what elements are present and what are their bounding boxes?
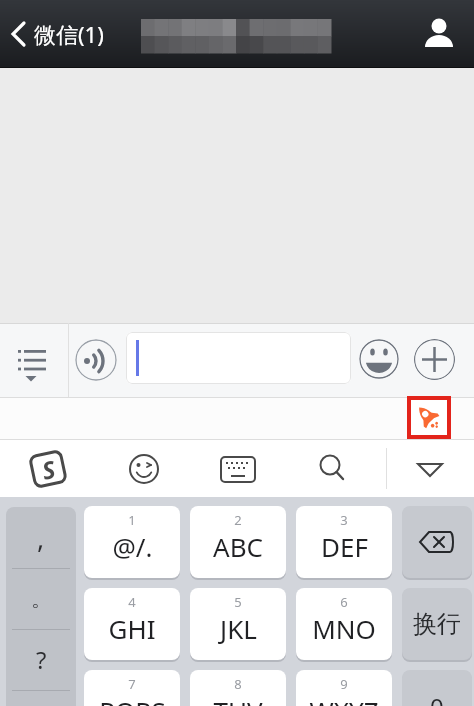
- button[interactable]: 9: [296, 670, 392, 706]
- staticText: 0: [430, 690, 444, 706]
- staticText: 换行: [413, 609, 461, 639]
- staticText: GHI: [108, 611, 156, 646]
- button[interactable]: 微信(1): [10, 19, 104, 49]
- button[interactable]: 8: [190, 670, 286, 706]
- staticText: WXYZ: [309, 693, 379, 706]
- staticText: PQRS: [99, 693, 166, 706]
- button[interactable]: [414, 339, 455, 380]
- button[interactable]: [12, 340, 56, 388]
- staticText: 5: [234, 593, 242, 611]
- staticText: 7: [128, 675, 136, 693]
- button[interactable]: ,: [6, 507, 76, 568]
- staticText: 9: [340, 675, 348, 693]
- button[interactable]: 5: [190, 588, 286, 660]
- staticText: 微信(1): [34, 19, 104, 49]
- staticText: MNO: [312, 611, 376, 646]
- button[interactable]: [422, 17, 456, 51]
- staticText: 。: [31, 586, 52, 612]
- button[interactable]: 换行: [402, 588, 472, 660]
- button[interactable]: [407, 396, 451, 439]
- staticText: 2: [234, 511, 242, 529]
- staticText: 4: [128, 593, 136, 611]
- staticText: 8: [234, 675, 242, 693]
- staticText: TUV: [213, 693, 263, 706]
- button[interactable]: 4: [84, 588, 180, 660]
- staticText: @/.: [112, 529, 153, 564]
- button[interactable]: [313, 450, 351, 488]
- button[interactable]: 2: [190, 506, 286, 578]
- button[interactable]: [125, 450, 163, 488]
- staticText: ?: [36, 643, 47, 676]
- button[interactable]: [126, 332, 351, 384]
- button[interactable]: 3: [296, 506, 392, 578]
- button[interactable]: 7: [84, 670, 180, 706]
- button[interactable]: 0: [402, 670, 472, 706]
- button[interactable]: ?: [6, 629, 76, 690]
- button[interactable]: [219, 450, 257, 488]
- button[interactable]: S: [29, 450, 67, 488]
- button[interactable]: 1: [84, 506, 180, 578]
- staticText: 3: [340, 511, 348, 529]
- button[interactable]: [411, 450, 449, 488]
- staticText: 1: [128, 511, 136, 529]
- button[interactable]: 6: [296, 588, 392, 660]
- staticText: JKL: [220, 611, 257, 646]
- button[interactable]: [402, 506, 472, 578]
- button[interactable]: 。: [6, 568, 76, 629]
- staticText: S: [39, 452, 58, 487]
- button[interactable]: [359, 339, 399, 379]
- staticText: ABC: [213, 529, 263, 564]
- staticText: ,: [37, 519, 45, 556]
- staticText: 6: [340, 593, 348, 611]
- button[interactable]: [75, 339, 117, 381]
- staticText: DEF: [321, 529, 368, 564]
